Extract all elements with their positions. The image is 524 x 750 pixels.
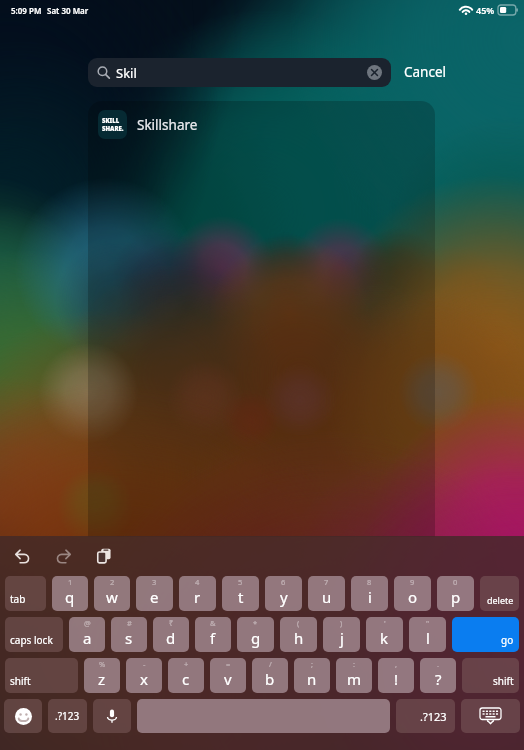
- staticText: go: [501, 633, 514, 647]
- staticText: 0: [453, 577, 458, 587]
- staticText: k: [380, 628, 389, 648]
- staticText: o: [408, 587, 418, 607]
- staticText: :: [353, 659, 356, 669]
- staticText: .: [437, 659, 440, 669]
- button[interactable]: .?123: [48, 699, 87, 733]
- button[interactable]: 0: [437, 576, 474, 611]
- button[interactable]: ": [409, 617, 446, 652]
- button[interactable]: .?123: [396, 699, 455, 733]
- button[interactable]: Hide keyboard: [461, 699, 520, 733]
- button[interactable]: delete: [480, 576, 519, 611]
- staticText: q: [65, 587, 75, 607]
- staticText: #: [127, 618, 132, 628]
- button[interactable]: 9: [394, 576, 431, 611]
- staticText: ): [340, 618, 343, 628]
- staticText: d: [166, 628, 176, 648]
- button[interactable]: ;: [294, 658, 330, 693]
- button[interactable]: *: [237, 617, 274, 652]
- staticText: ': [384, 618, 386, 628]
- button[interactable]: Redo: [50, 543, 76, 569]
- staticText: SHARE.: [102, 125, 124, 133]
- button[interactable]: #: [111, 617, 147, 652]
- staticText: (: [297, 618, 300, 628]
- button[interactable]: (: [280, 617, 317, 652]
- staticText: +: [184, 659, 189, 669]
- staticText: x: [140, 669, 148, 689]
- staticText: 8: [367, 577, 372, 587]
- staticText: =: [226, 659, 231, 669]
- staticText: *: [253, 618, 258, 628]
- button[interactable]: :: [336, 658, 372, 693]
- staticText: shift: [493, 674, 514, 688]
- staticText: g: [251, 628, 261, 648]
- staticText: &: [210, 618, 216, 628]
- button[interactable]: caps lock: [5, 617, 63, 652]
- button[interactable]: Clear text: [367, 65, 382, 80]
- button[interactable]: &: [195, 617, 231, 652]
- button[interactable]: /: [252, 658, 288, 693]
- staticText: s: [125, 628, 133, 648]
- staticText: .?123: [55, 709, 80, 723]
- button[interactable]: ,: [378, 658, 414, 693]
- button[interactable]: 4: [179, 576, 216, 611]
- staticText: Skil: [116, 64, 137, 82]
- button[interactable]: ': [366, 617, 403, 652]
- button[interactable]: +: [168, 658, 204, 693]
- button[interactable]: .: [420, 658, 456, 693]
- staticText: i: [368, 587, 372, 607]
- button[interactable]: shift: [462, 658, 519, 693]
- staticText: 5: [238, 577, 243, 587]
- button[interactable]: SKILL: [88, 101, 435, 148]
- staticText: a: [83, 628, 92, 648]
- button[interactable]: 2: [94, 576, 130, 611]
- staticText: delete: [487, 594, 514, 606]
- staticText: f: [210, 628, 216, 648]
- button[interactable]: Undo: [9, 543, 35, 569]
- staticText: -: [143, 659, 146, 669]
- staticText: 9: [410, 577, 415, 587]
- staticText: 3: [152, 577, 157, 587]
- staticText: SKILL: [102, 117, 120, 125]
- button[interactable]: =: [210, 658, 246, 693]
- button[interactable]: 3: [136, 576, 173, 611]
- button[interactable]: Skil: [88, 58, 391, 87]
- staticText: w: [106, 587, 118, 607]
- staticText: e: [150, 587, 159, 607]
- button[interactable]: shift: [5, 658, 78, 693]
- button[interactable]: 7: [308, 576, 345, 611]
- staticText: Skillshare: [137, 116, 198, 134]
- button[interactable]: 1: [52, 576, 88, 611]
- staticText: 2: [110, 577, 115, 587]
- button[interactable]: Cancel: [397, 57, 454, 87]
- button[interactable]: go: [452, 617, 519, 652]
- staticText: ,: [395, 659, 398, 669]
- staticText: 6: [281, 577, 286, 587]
- staticText: !: [394, 669, 399, 689]
- button[interactable]: 8: [351, 576, 388, 611]
- button[interactable]: ₹: [153, 617, 189, 652]
- staticText: ?: [435, 669, 442, 689]
- button[interactable]: %: [84, 658, 120, 693]
- staticText: b: [265, 669, 275, 689]
- staticText: l: [426, 628, 430, 648]
- staticText: 4: [195, 577, 200, 587]
- staticText: .?123: [420, 709, 447, 724]
- staticText: h: [294, 628, 304, 648]
- staticText: u: [322, 587, 332, 607]
- button[interactable]: tab: [5, 576, 46, 611]
- button[interactable]: Dictation: [93, 699, 131, 733]
- staticText: @: [84, 618, 91, 628]
- button[interactable]: @: [69, 617, 105, 652]
- button[interactable]: 5: [222, 576, 259, 611]
- button[interactable]: 6: [265, 576, 302, 611]
- button[interactable]: Space: [137, 699, 390, 733]
- button[interactable]: Emoji: [4, 699, 42, 733]
- button[interactable]: ): [323, 617, 360, 652]
- staticText: Cancel: [404, 63, 447, 81]
- button[interactable]: Paste: [91, 543, 117, 569]
- staticText: ;: [311, 659, 314, 669]
- button[interactable]: -: [126, 658, 162, 693]
- staticText: 5:09 PM: [11, 5, 42, 16]
- staticText: j: [340, 628, 344, 648]
- staticText: caps lock: [10, 633, 53, 647]
